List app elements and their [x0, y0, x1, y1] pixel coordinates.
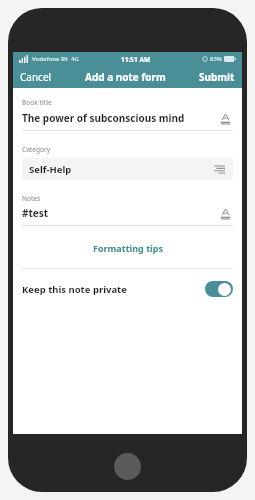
staticText: Self-Help — [29, 163, 72, 176]
staticText: Formatting tips — [93, 242, 163, 254]
staticText: #test — [22, 206, 49, 220]
button[interactable]: Text formatting — [217, 110, 233, 126]
button[interactable]: Text formatting — [217, 205, 233, 221]
staticText: The power of subconscious mind — [22, 111, 185, 125]
staticText: Keep this note private — [22, 283, 127, 296]
staticText: 11:51 AM — [121, 55, 151, 64]
button[interactable]: Formatting tips — [22, 239, 233, 257]
staticText: Notes — [22, 194, 41, 203]
button[interactable]: Keep this note private toggle — [205, 281, 233, 297]
button[interactable]: Self-Help — [22, 158, 233, 180]
button[interactable]: Keep this note private — [22, 279, 233, 299]
staticText: Add a note form — [85, 70, 166, 84]
button[interactable]: Choose category — [212, 162, 226, 176]
staticText: Submit — [199, 70, 235, 84]
staticText: Book title — [22, 98, 52, 107]
button[interactable]: Cancel — [13, 66, 59, 88]
staticText: Category — [22, 145, 51, 154]
button[interactable]: Home — [114, 453, 141, 480]
staticText: 4G — [71, 55, 79, 63]
staticText: 85% — [210, 55, 222, 63]
staticText: Vodafone IN — [32, 55, 68, 63]
staticText: Cancel — [20, 70, 52, 84]
button[interactable]: Submit — [192, 66, 242, 88]
